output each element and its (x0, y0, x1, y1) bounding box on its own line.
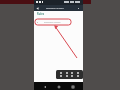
staticText: Rules (37, 12, 45, 16)
button[interactable]: Recents (69, 83, 76, 90)
button[interactable]: More options (75, 5, 81, 11)
button[interactable]: developer options (35, 19, 71, 25)
button[interactable]: Back (41, 83, 48, 90)
staticText: developer options (46, 7, 64, 10)
staticText: developer options (44, 21, 61, 24)
button[interactable]: Back (35, 5, 40, 11)
button[interactable]: Home (55, 83, 62, 90)
